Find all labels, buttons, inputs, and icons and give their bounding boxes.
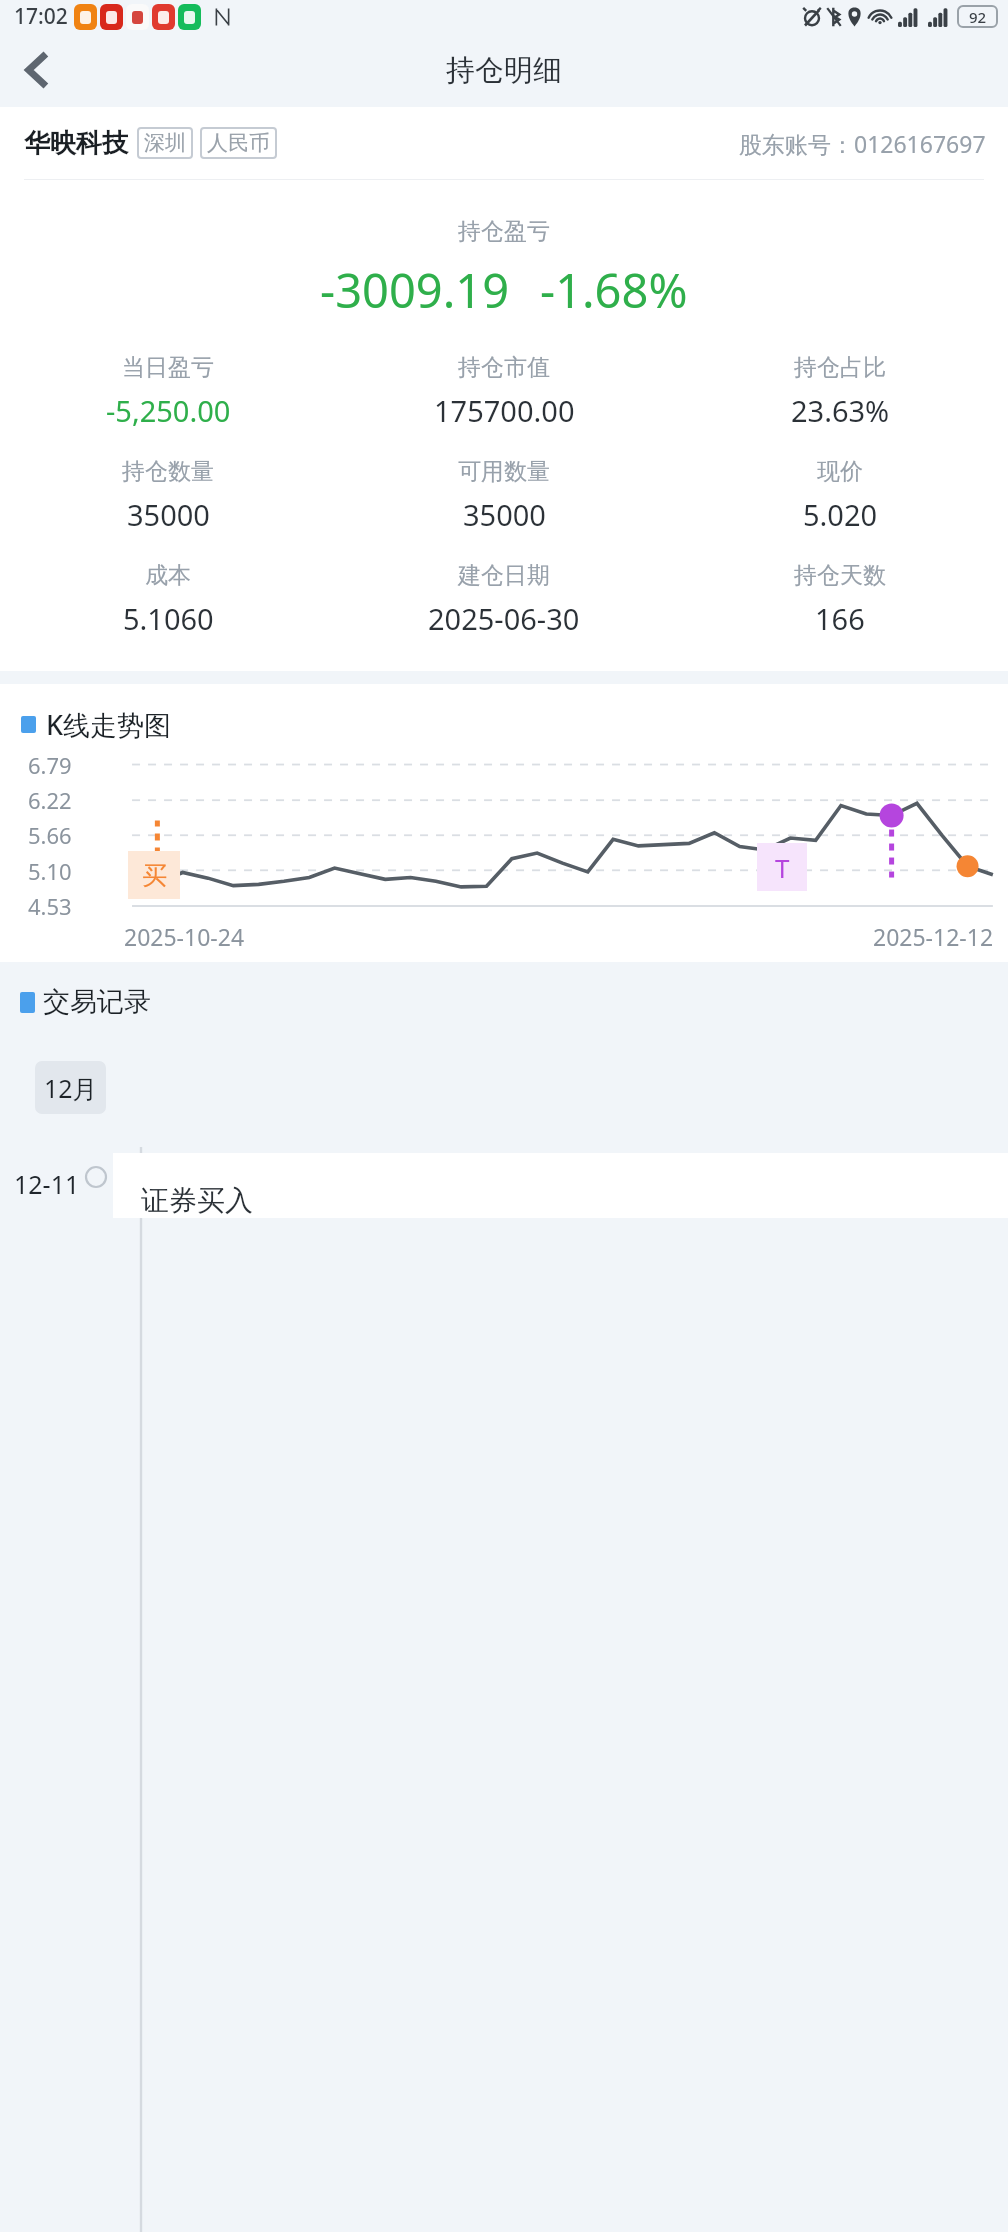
- staticText: 35000: [127, 495, 210, 534]
- staticText: 92: [969, 7, 987, 27]
- staticText: 现价: [817, 457, 863, 486]
- staticText: 建仓日期: [458, 561, 550, 590]
- staticText: 12-11: [14, 1167, 80, 1201]
- staticText: 5.020: [803, 495, 878, 534]
- staticText: 6.79: [28, 750, 72, 780]
- staticText: 23.63%: [791, 391, 890, 430]
- staticText: 成本: [145, 561, 191, 590]
- staticText: 17:02: [14, 2, 68, 31]
- button[interactable]: 证券买入: [141, 1183, 1008, 1218]
- staticText: 175700.00: [434, 391, 575, 430]
- button[interactable]: 交易记录: [20, 985, 151, 1019]
- staticText: 2025-06-30: [428, 599, 580, 638]
- staticText: 深圳: [144, 130, 186, 156]
- staticText: 可用数量: [458, 457, 550, 486]
- staticText: -3009.19: [320, 258, 510, 322]
- staticText: 166: [815, 599, 865, 638]
- staticText: 12月: [44, 1071, 98, 1105]
- staticText: 华映科技: [24, 127, 128, 160]
- staticText: 持仓市值: [458, 353, 550, 382]
- staticText: 买: [142, 860, 167, 891]
- staticText: 5.66: [28, 820, 72, 850]
- staticText: K线走势图: [46, 706, 172, 743]
- staticText: 6.22: [28, 785, 72, 815]
- staticText: -5,250.00: [106, 391, 231, 430]
- staticText: 持仓数量: [122, 457, 214, 486]
- staticText: 5.10: [28, 856, 72, 886]
- staticText: 4.53: [28, 891, 72, 921]
- button[interactable]: Back: [6, 39, 68, 101]
- button[interactable]: K线走势图: [21, 706, 172, 743]
- staticText: 当日盈亏: [122, 353, 214, 382]
- staticText: 持仓明细: [446, 52, 562, 89]
- staticText: T: [775, 850, 790, 885]
- staticText: 持仓盈亏: [0, 217, 1008, 246]
- staticText: 5.1060: [123, 599, 214, 638]
- staticText: 证券买入: [141, 1183, 253, 1218]
- staticText: 人民币: [207, 130, 270, 156]
- staticText: 35000: [463, 495, 546, 534]
- staticText: 持仓天数: [794, 561, 886, 590]
- staticText: 2025-10-24: [124, 921, 245, 952]
- staticText: 2025-12-12: [873, 921, 994, 952]
- staticText: 交易记录: [43, 985, 151, 1019]
- staticText: 股东账号：0126167697: [739, 128, 986, 159]
- staticText: -1.68%: [540, 258, 688, 322]
- staticText: 持仓占比: [794, 353, 886, 382]
